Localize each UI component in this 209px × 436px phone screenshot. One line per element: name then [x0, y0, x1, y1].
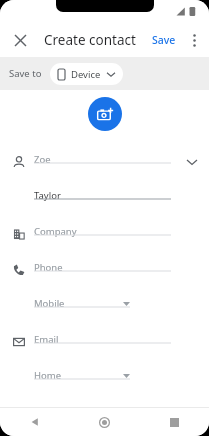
- button[interactable]: Zoe: [0, 144, 209, 180]
- button[interactable]: Taylor: [0, 180, 209, 216]
- button[interactable]: Close: [8, 28, 32, 52]
- button[interactable]: Home: [0, 360, 209, 396]
- button[interactable]: Mobile: [0, 288, 209, 324]
- button[interactable]: Expand name fields: [183, 153, 201, 171]
- button[interactable]: Recent apps: [139, 408, 209, 436]
- staticText: Phone: [34, 261, 63, 274]
- button[interactable]: More options: [183, 29, 205, 51]
- button[interactable]: Phone: [0, 252, 209, 288]
- button[interactable]: Device: [50, 63, 123, 85]
- staticText: Device: [71, 68, 101, 81]
- staticText: Zoe: [34, 153, 51, 166]
- button[interactable]: Home: [69, 408, 139, 436]
- button[interactable]: Email: [0, 324, 209, 360]
- staticText: Company: [34, 225, 77, 238]
- staticText: Email: [34, 333, 59, 346]
- staticText: Create contact: [44, 31, 136, 49]
- button[interactable]: Back: [0, 408, 69, 436]
- button[interactable]: Save: [149, 31, 179, 49]
- staticText: Home: [34, 369, 62, 382]
- button[interactable]: Add photo: [88, 97, 122, 131]
- staticText: Save to: [9, 67, 42, 80]
- staticText: Save: [152, 33, 176, 47]
- button[interactable]: Company: [0, 216, 209, 252]
- staticText: Mobile: [34, 297, 65, 310]
- staticText: Taylor: [34, 189, 61, 202]
